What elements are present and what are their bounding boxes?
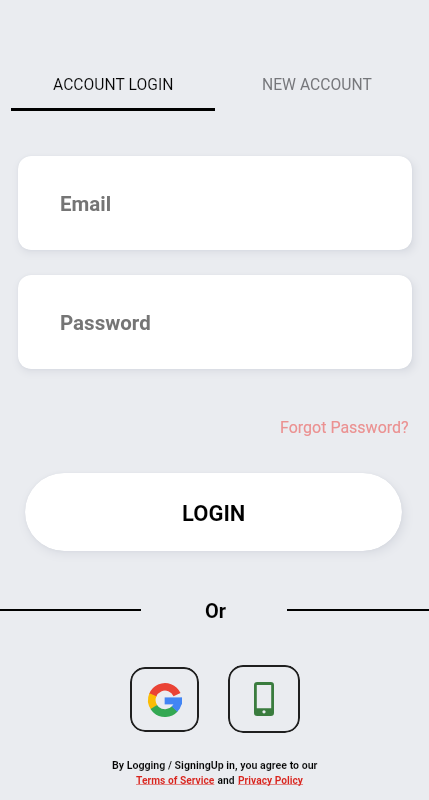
- staticText: Or: [205, 599, 227, 622]
- button[interactable]: Sign in with phone number: [228, 665, 300, 733]
- button[interactable]: Privacy Policy: [238, 774, 304, 786]
- staticText: Password: [60, 311, 151, 335]
- staticText: LOGIN: [182, 501, 246, 527]
- button[interactable]: Password: [18, 275, 412, 369]
- button[interactable]: ACCOUNT LOGIN: [11, 52, 215, 111]
- button[interactable]: Terms of Service: [136, 774, 215, 786]
- staticText: Forgot Password?: [280, 418, 409, 437]
- button[interactable]: LOGIN: [25, 473, 402, 551]
- staticText: and: [215, 774, 238, 786]
- button[interactable]: Forgot Password?: [240, 409, 409, 445]
- button[interactable]: Email: [18, 156, 412, 250]
- staticText: By Logging / SigningUp in, you agree to …: [112, 759, 318, 771]
- staticText: Email: [60, 192, 112, 216]
- button[interactable]: NEW ACCOUNT: [215, 52, 419, 111]
- button[interactable]: Sign in with Google: [130, 667, 199, 732]
- staticText: NEW ACCOUNT: [262, 75, 372, 93]
- staticText: ACCOUNT LOGIN: [53, 75, 174, 93]
